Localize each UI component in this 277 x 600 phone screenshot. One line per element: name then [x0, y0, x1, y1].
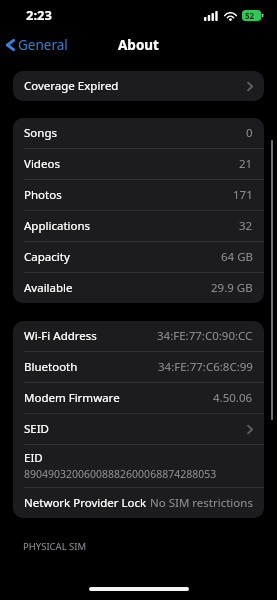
button[interactable]: Modem Firmware	[13, 383, 264, 413]
staticText: Coverage Expired	[24, 78, 119, 94]
button[interactable]: Bluetooth	[13, 352, 264, 382]
staticText: Photos	[24, 187, 62, 203]
button[interactable]: Coverage Expired	[13, 71, 264, 101]
staticText: No SIM restrictions	[150, 495, 253, 511]
staticText: 4.50.06	[213, 390, 253, 406]
button[interactable]: Available	[13, 273, 264, 303]
button[interactable]: Wi-Fi Address	[13, 321, 264, 351]
staticText: 171	[233, 187, 253, 203]
staticText: PHYSICAL SIM	[23, 540, 87, 553]
button[interactable]: Photos	[13, 180, 264, 210]
staticText: Modem Firmware	[24, 390, 120, 406]
staticText: Available	[24, 280, 73, 296]
staticText: 21	[239, 156, 253, 172]
button[interactable]: SEID	[13, 414, 264, 444]
staticText: 32	[239, 218, 253, 234]
button[interactable]: Songs	[13, 118, 264, 148]
button[interactable]: Capacity	[13, 242, 264, 272]
staticText: 89049032006008882600068874288053	[24, 467, 217, 481]
staticText: 64 GB	[221, 249, 253, 265]
staticText: Applications	[24, 218, 91, 234]
staticText: 29.9 GB	[211, 280, 253, 296]
staticText: Videos	[24, 156, 60, 172]
staticText: About	[118, 36, 159, 54]
staticText: Wi-Fi Address	[24, 328, 97, 344]
other: Open Coverage Expired	[247, 81, 253, 92]
staticText: 52	[245, 10, 255, 21]
staticText: 34:FE:77:C6:8C:99	[158, 359, 253, 375]
button[interactable]: EID	[13, 445, 264, 487]
other: Open SEID	[247, 424, 253, 435]
staticText: EID	[24, 450, 43, 466]
staticText: General	[18, 36, 68, 54]
staticText: 0	[246, 125, 253, 141]
staticText: Songs	[24, 125, 57, 141]
button[interactable]: General	[0, 31, 76, 59]
staticText: Bluetooth	[24, 359, 78, 375]
staticText: Capacity	[24, 249, 70, 265]
button[interactable]: Applications	[13, 211, 264, 241]
staticText: Network Provider Lock	[24, 495, 147, 511]
staticText: 2:23	[26, 6, 52, 24]
button[interactable]: Videos	[13, 149, 264, 179]
button[interactable]: Network Provider Lock	[13, 488, 264, 518]
staticText: 34:FE:77:C0:90:CC	[157, 328, 253, 344]
staticText: SEID	[24, 421, 50, 437]
